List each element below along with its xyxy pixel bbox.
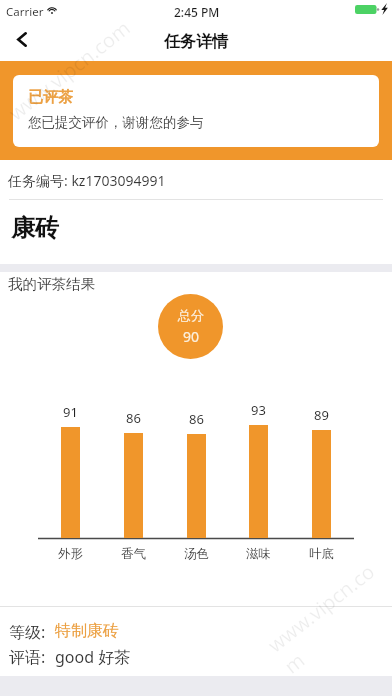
staticText: 外形 [58, 546, 83, 562]
staticText: 89 [314, 406, 329, 424]
staticText: 特制康砖 [55, 621, 119, 641]
staticText: 等级: [9, 621, 50, 643]
staticText: 90 [183, 327, 200, 346]
staticText: 2:45 PM [174, 4, 220, 20]
staticText: 叶底 [309, 546, 334, 562]
staticText: 86 [126, 409, 141, 427]
staticText: 评语: [9, 646, 50, 668]
staticText: 91 [63, 403, 78, 421]
staticText: 已评茶 [28, 88, 73, 107]
button[interactable]: Back [4, 21, 40, 57]
staticText: 任务详情 [164, 32, 228, 52]
staticText: Carrier [6, 4, 44, 20]
staticText: 任务编号: kz1703094991 [8, 171, 166, 190]
staticText: 总分 [178, 307, 204, 323]
staticText: good 好茶 [55, 646, 131, 668]
staticText: 我的评茶结果 [8, 275, 95, 293]
staticText: 您已提交评价，谢谢您的参与 [28, 114, 204, 131]
staticText: 康砖 [11, 213, 59, 243]
staticText: 滋味 [246, 546, 271, 562]
staticText: 86 [189, 410, 204, 428]
staticText: 香气 [121, 546, 146, 562]
staticText: 汤色 [184, 546, 209, 562]
staticText: 93 [251, 401, 266, 419]
